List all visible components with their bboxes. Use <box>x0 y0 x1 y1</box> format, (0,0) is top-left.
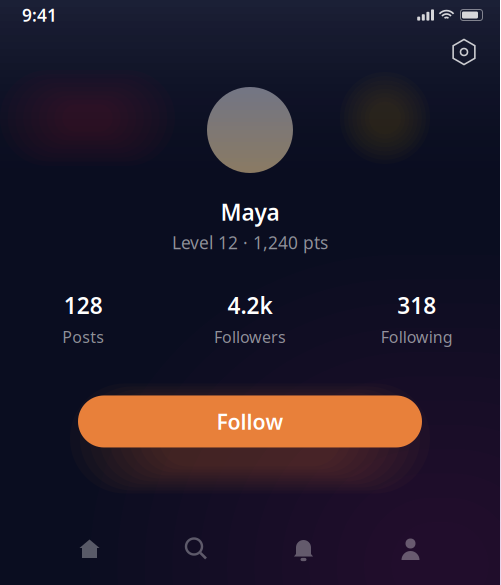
staticText: Followers <box>214 326 286 347</box>
button[interactable]: Home <box>36 513 143 585</box>
button[interactable]: Profile <box>357 513 464 585</box>
button[interactable]: Settings <box>442 30 486 74</box>
button[interactable]: Follow <box>78 395 422 447</box>
staticText: Maya <box>220 197 279 227</box>
staticText: Following <box>381 326 453 347</box>
staticText: 318 <box>397 290 436 320</box>
staticText: Level 12 · 1,240 pts <box>172 231 328 254</box>
staticText: Posts <box>62 326 104 347</box>
button[interactable]: Alerts <box>250 513 357 585</box>
staticText: 9:41 <box>22 3 57 26</box>
staticText: Follow <box>216 407 283 436</box>
staticText: 128 <box>64 290 103 320</box>
button[interactable]: Search <box>143 513 250 585</box>
staticText: 4.2k <box>227 290 272 320</box>
